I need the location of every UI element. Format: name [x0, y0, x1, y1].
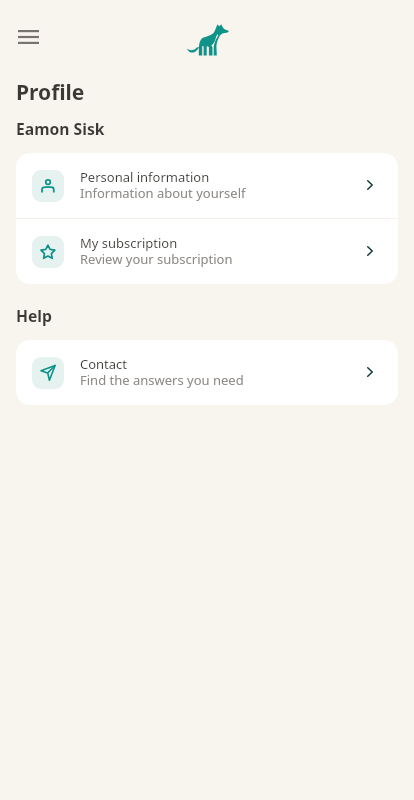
staticText: My subscription	[80, 234, 178, 252]
button[interactable]: Contact	[16, 340, 398, 405]
button[interactable]: Menu	[10, 24, 46, 44]
staticText: Find the answers you need	[80, 371, 244, 389]
staticText: Help	[16, 305, 52, 326]
staticText: Personal information	[80, 168, 210, 186]
staticText: Profile	[16, 78, 85, 107]
staticText: Review your subscription	[80, 250, 233, 268]
staticText: Eamon Sisk	[16, 118, 105, 139]
staticText: Contact	[80, 355, 128, 373]
button[interactable]: My subscription	[16, 219, 398, 284]
button[interactable]: Personal information	[16, 153, 398, 218]
staticText: Information about yourself	[80, 184, 246, 202]
